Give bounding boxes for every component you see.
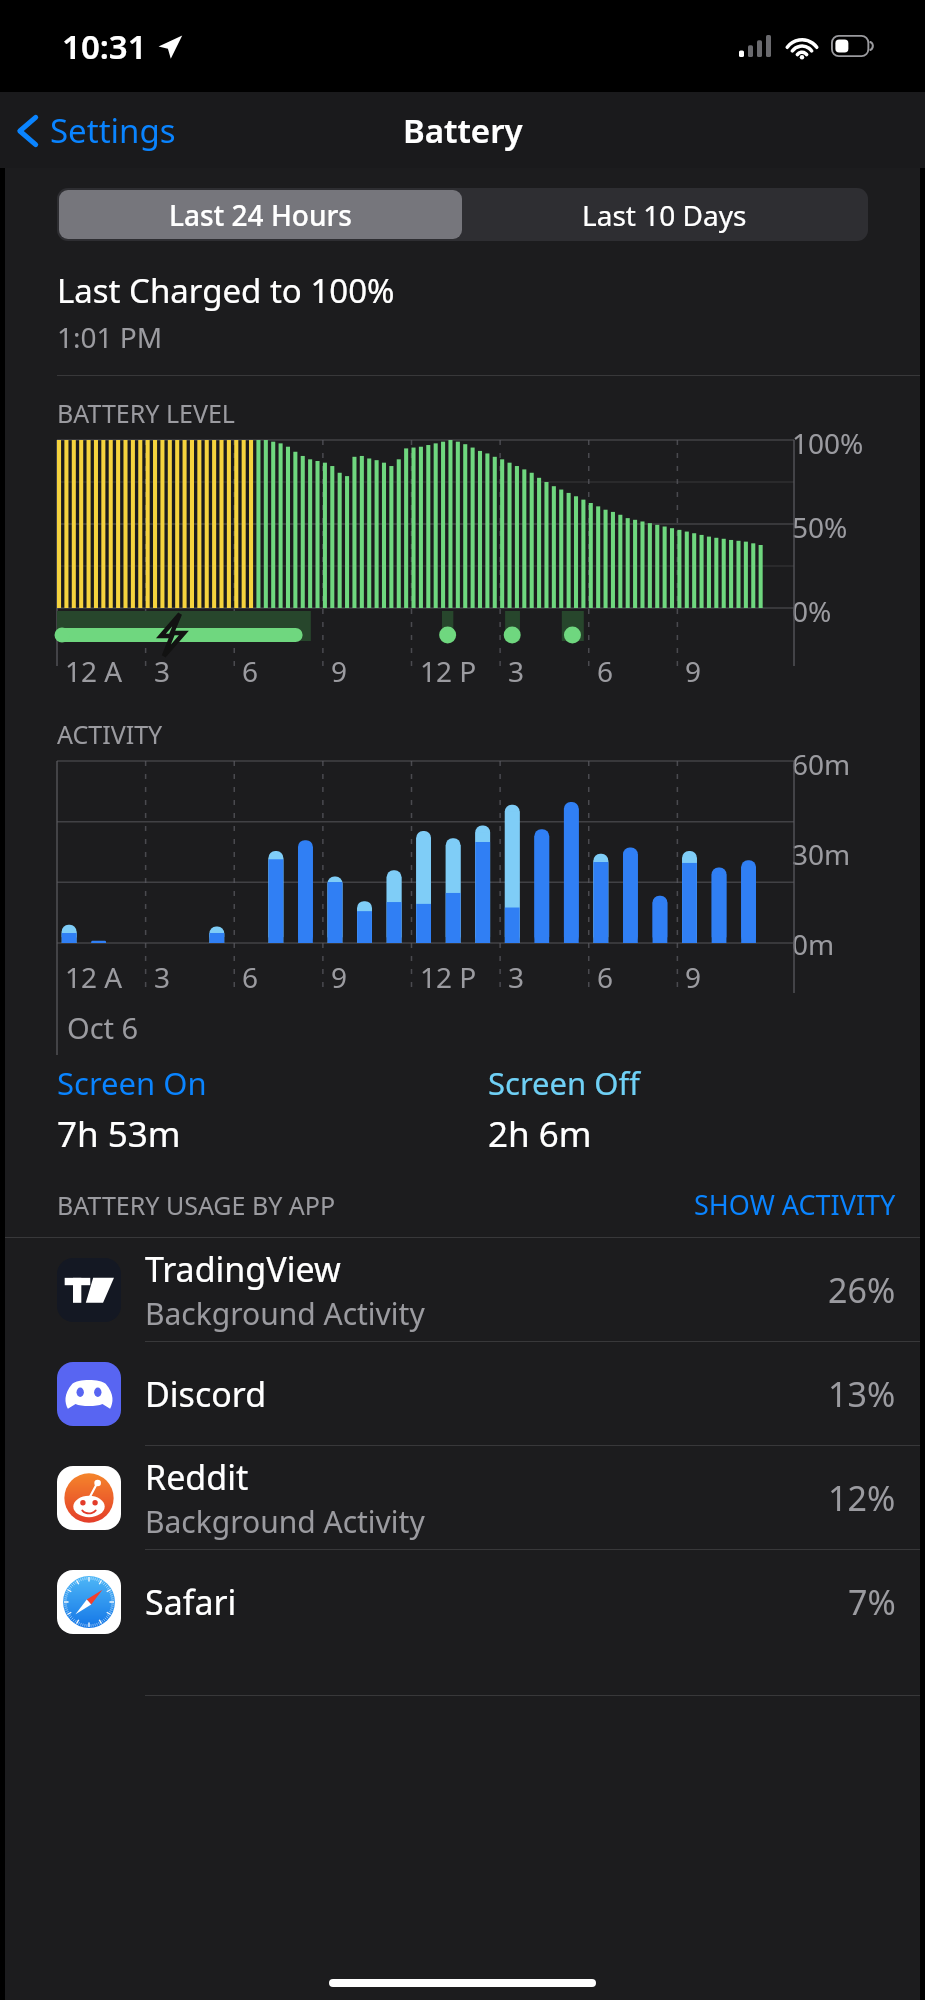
staticText: 0m [792,925,835,963]
staticText: 7h 53m [57,1110,181,1158]
staticText: 0% [792,592,832,630]
staticText: Background Activity [145,1293,425,1334]
staticText: 3 [154,958,171,996]
staticText: 2h 6m [488,1110,592,1158]
staticText: 10:31 [62,24,147,69]
button[interactable]: Last 24 Hours [59,190,462,239]
staticText: 6 [597,958,614,996]
staticText: Settings [50,108,176,153]
button[interactable]: Discord [5,1342,920,1445]
staticText: 12 P [420,958,477,996]
staticText: BATTERY LEVEL [57,396,235,430]
staticText: 12 A [65,652,123,690]
other: Reddit [57,1466,121,1530]
staticText: Discord [145,1371,267,1417]
staticText: 3 [154,652,171,690]
staticText: 60m [792,745,851,783]
staticText: 3 [508,958,525,996]
staticText: SHOW ACTIVITY [694,1186,896,1223]
staticText: Screen On [57,1062,207,1104]
staticText: ACTIVITY [57,717,163,751]
staticText: 100% [792,424,864,462]
staticText: 3 [508,652,525,690]
staticText: Background Activity [145,1501,425,1542]
staticText: Last Charged to 100% [57,268,395,313]
staticText: BATTERY USAGE BY APP [57,1188,336,1222]
staticText: Safari [145,1579,237,1625]
staticText: 50% [792,508,848,546]
button[interactable]: Safari [5,1550,920,1653]
staticText: 12 A [65,958,123,996]
staticText: 9 [685,958,702,996]
staticText: 30m [792,835,851,873]
staticText: Last 24 Hours [169,196,352,234]
staticText: Screen Off [488,1062,640,1104]
staticText: 6 [242,958,259,996]
button[interactable]: Settings [0,98,192,163]
other: Safari [57,1570,121,1634]
other: Discord [57,1362,121,1426]
staticText: 12 P [420,652,477,690]
staticText: 12% [828,1475,896,1521]
button[interactable]: Last 10 Days [462,190,866,239]
staticText: Last 10 Days [582,196,747,234]
staticText: 9 [685,652,702,690]
other: TradingView [57,1258,121,1322]
staticText: Battery [403,108,523,153]
staticText: TradingView [145,1246,341,1292]
staticText: 9 [331,652,348,690]
staticText: 9 [331,958,348,996]
staticText: 6 [242,652,259,690]
staticText: 1:01 PM [57,318,163,356]
button[interactable]: SHOW ACTIVITY [694,1186,896,1223]
staticText: 26% [828,1267,896,1313]
staticText: 6 [597,652,614,690]
staticText: Oct 6 [67,1008,139,1047]
staticText: 7% [848,1579,896,1625]
button[interactable]: TradingView [5,1238,920,1341]
button[interactable]: Reddit [5,1446,920,1549]
staticText: 13% [828,1371,896,1417]
staticText: Reddit [145,1454,249,1500]
